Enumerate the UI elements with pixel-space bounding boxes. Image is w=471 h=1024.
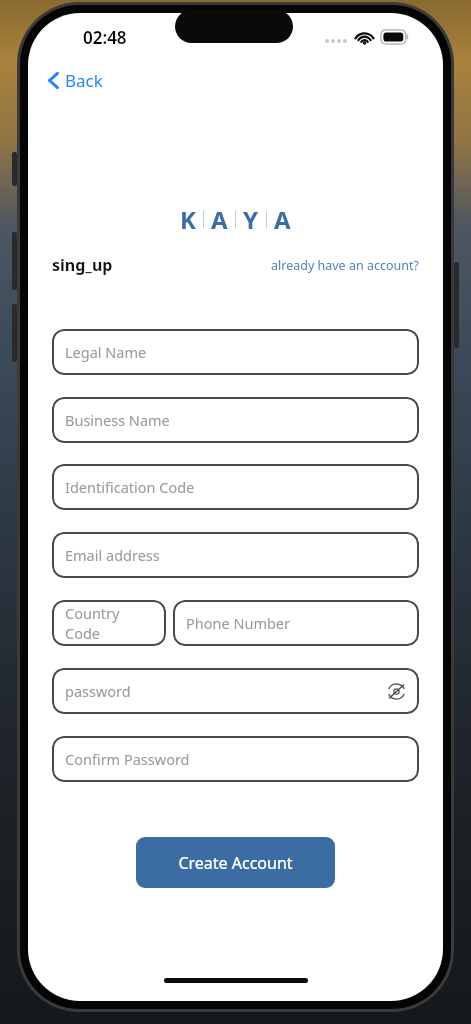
- button[interactable]: already have an account?: [271, 257, 419, 274]
- staticText: Country Code: [65, 603, 156, 643]
- button[interactable]: Show password: [383, 678, 409, 704]
- staticText: password: [65, 681, 131, 701]
- button[interactable]: Email address: [52, 532, 419, 578]
- staticText: Phone Number: [186, 613, 291, 633]
- button[interactable]: Back: [40, 65, 115, 96]
- staticText: A: [211, 203, 228, 236]
- staticText: Confirm Password: [65, 749, 190, 769]
- staticText: Back: [65, 69, 103, 92]
- staticText: Y: [243, 203, 259, 236]
- staticText: Business Name: [65, 410, 170, 430]
- staticText: 02:48: [83, 26, 127, 49]
- button[interactable]: Country Code: [52, 600, 166, 646]
- staticText: K: [180, 203, 196, 236]
- button[interactable]: Legal Name: [52, 329, 419, 375]
- staticText: Identification Code: [65, 477, 195, 497]
- staticText: Create Account: [178, 852, 293, 874]
- staticText: sing_up: [52, 254, 113, 276]
- button[interactable]: Identification Code: [52, 464, 419, 510]
- button[interactable]: Confirm Password: [52, 736, 419, 782]
- button[interactable]: Create Account: [136, 837, 335, 888]
- button[interactable]: Business Name: [52, 397, 419, 443]
- staticText: Legal Name: [65, 342, 147, 362]
- staticText: already have an account?: [271, 257, 419, 274]
- staticText: Email address: [65, 545, 160, 565]
- staticText: A: [274, 203, 291, 236]
- button[interactable]: password: [52, 668, 419, 714]
- button[interactable]: Phone Number: [173, 600, 419, 646]
